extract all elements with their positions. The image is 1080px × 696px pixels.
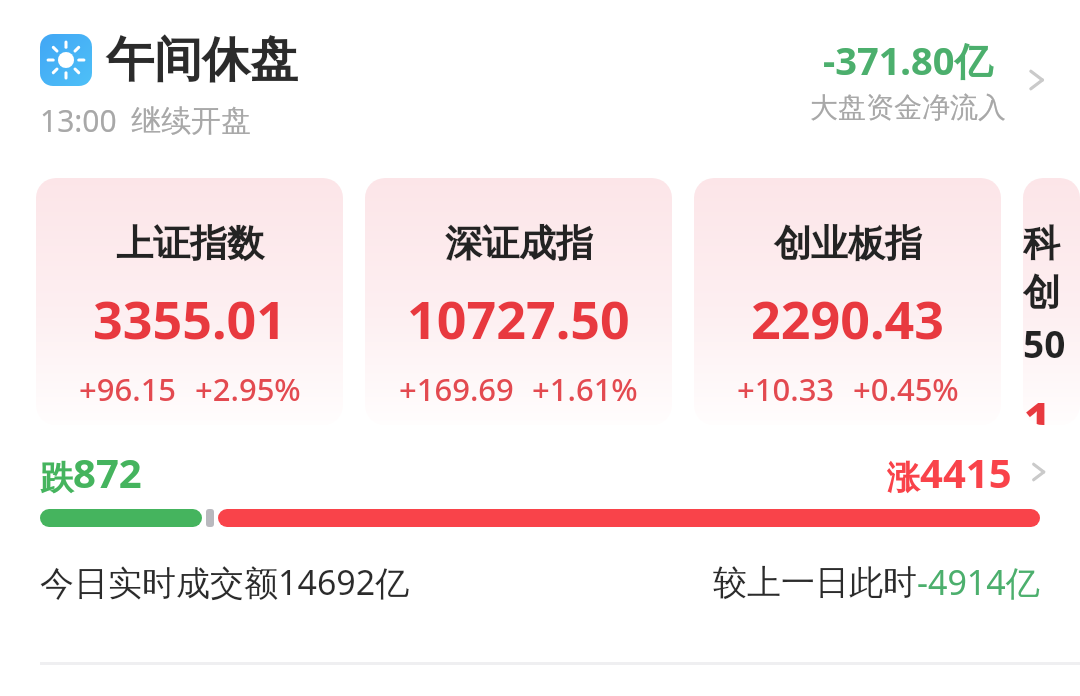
staticText: 1000.00	[1023, 384, 1080, 425]
staticText: 午间休盘	[106, 30, 298, 90]
staticText: +169.69	[399, 368, 514, 410]
button[interactable]: 创业板指	[694, 178, 1001, 425]
staticText: 3355.01	[93, 283, 287, 354]
button[interactable]: 科创50	[1023, 178, 1080, 425]
staticText: 跌	[40, 457, 73, 499]
button[interactable]: 深证成指	[365, 178, 672, 425]
staticText: 创业板指	[774, 220, 922, 267]
staticText: +0.45%	[853, 368, 959, 410]
staticText: 继续开盘	[131, 102, 251, 140]
button[interactable]: -371.80亿	[810, 34, 1054, 125]
staticText: +2.95%	[195, 368, 301, 410]
button[interactable]: 上证指数	[36, 178, 343, 425]
staticText: 较上一日此时	[713, 561, 917, 604]
staticText: 上证指数	[116, 220, 264, 267]
staticText: 13:00	[40, 100, 117, 141]
staticText: 10727.50	[407, 283, 630, 354]
button[interactable]: 跌	[40, 445, 1054, 499]
staticText: +10.33	[737, 368, 835, 410]
staticText: 4415	[920, 445, 1012, 499]
staticText: 深证成指	[445, 220, 593, 267]
staticText: 大盘资金净流入	[810, 90, 1006, 125]
staticText: 科创50	[1023, 220, 1080, 368]
staticText: +96.15	[79, 368, 177, 410]
staticText: 872	[73, 445, 142, 499]
staticText: 涨	[887, 457, 920, 499]
other: 午间休盘	[40, 34, 92, 86]
staticText: -4914亿	[917, 559, 1040, 605]
staticText: 2290.43	[751, 283, 945, 354]
staticText: +1.61%	[532, 368, 638, 410]
staticText: -371.80亿	[823, 34, 993, 86]
staticText: 今日实时成交额14692亿	[40, 559, 410, 605]
